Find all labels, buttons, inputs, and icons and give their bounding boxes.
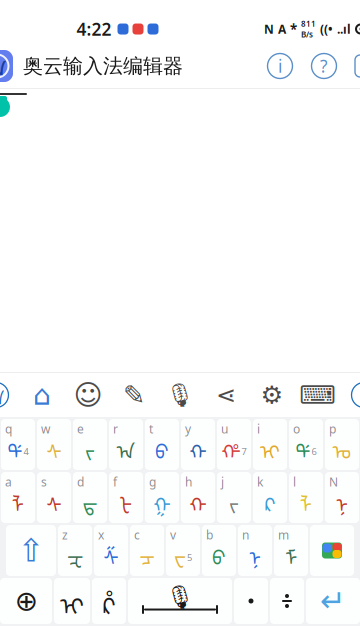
button[interactable]: p: [325, 419, 359, 470]
button[interactable]: q: [1, 419, 35, 470]
button[interactable]: e: [73, 419, 107, 470]
staticText: ᡩ: [295, 430, 310, 464]
staticText: 7: [241, 445, 246, 458]
staticText: o: [293, 421, 300, 437]
button[interactable]: f: [109, 472, 143, 523]
staticText: A: [278, 21, 286, 37]
button[interactable]: Information: [261, 47, 299, 85]
button[interactable]: Symbols: [270, 578, 304, 624]
staticText: r: [113, 421, 118, 437]
staticText: ᠬ: [189, 430, 206, 464]
button[interactable]: Emoji: [69, 375, 107, 415]
button[interactable]: Space: [128, 578, 232, 624]
staticText: *: [290, 20, 297, 38]
button[interactable]: t: [145, 419, 179, 470]
staticText: d: [77, 474, 84, 490]
staticText: l: [293, 474, 296, 490]
staticText: q: [5, 421, 12, 437]
staticText: 811 B/s: [301, 18, 316, 40]
button[interactable]: Mongolian letter: [92, 578, 126, 624]
staticText: ᠵ: [85, 430, 95, 464]
staticText: ⋖: [216, 381, 236, 409]
staticText: y: [185, 421, 191, 437]
staticText: s: [41, 474, 47, 490]
button[interactable]: d: [73, 472, 107, 523]
button[interactable]: g: [145, 472, 179, 523]
staticText: ⇧: [17, 532, 44, 569]
staticText: ⚙: [260, 381, 283, 409]
button[interactable]: s: [37, 472, 71, 523]
button[interactable]: Voice input: [161, 375, 199, 415]
staticText: ((•: [320, 21, 333, 37]
button[interactable]: Input method: [310, 525, 354, 576]
staticText: ᠯ: [300, 483, 312, 517]
button[interactable]: m: [274, 525, 308, 576]
staticText: ᠵ: [229, 483, 239, 517]
button[interactable]: j: [217, 472, 251, 523]
staticText: ᠢ: [60, 580, 84, 621]
button[interactable]: Settings: [253, 375, 291, 415]
button[interactable]: h: [181, 472, 215, 523]
staticText: ᠯ: [12, 483, 24, 517]
staticText: ᠪ: [212, 536, 226, 570]
button[interactable]: z: [58, 525, 92, 576]
button[interactable]: o: [289, 419, 323, 470]
staticText: ᠨ: [336, 483, 348, 517]
staticText: 🎙: [165, 584, 194, 610]
staticText: z: [62, 527, 68, 543]
staticText: ᠨ: [249, 536, 261, 570]
button[interactable]: v: [166, 525, 200, 576]
button[interactable]: Switch language: [0, 578, 52, 624]
staticText: m: [278, 527, 289, 543]
button[interactable]: y: [181, 419, 215, 470]
staticText: ↵: [320, 584, 346, 618]
button[interactable]: Hide keyboard: [345, 375, 360, 415]
staticText: ᠤ: [332, 430, 351, 464]
button[interactable]: Return: [306, 578, 360, 624]
staticText: ?: [320, 54, 328, 77]
staticText: ᡩ: [7, 430, 22, 464]
button[interactable]: x: [94, 525, 128, 576]
button[interactable]: u: [217, 419, 251, 470]
staticText: f: [113, 474, 117, 490]
staticText: v: [170, 527, 176, 543]
button[interactable]: Help: [305, 47, 343, 85]
button[interactable]: Mongolian letter: [54, 578, 90, 624]
staticText: g: [149, 474, 156, 490]
staticText: i: [257, 421, 260, 437]
staticText: 4:22: [76, 17, 111, 40]
staticText: ᡭ: [102, 580, 115, 621]
button[interactable]: Mongolian input: [0, 375, 15, 415]
staticText: 🎙: [165, 382, 194, 408]
button[interactable]: Period: [234, 578, 268, 624]
staticText: ⌂: [33, 379, 51, 411]
button[interactable]: Share: [207, 375, 245, 415]
staticText: ᠢ: [260, 430, 280, 464]
button[interactable]: Shift: [6, 525, 56, 576]
staticText: ᠭ: [153, 483, 170, 517]
staticText: ⌄: [355, 384, 360, 406]
staticText: ᠠ: [0, 380, 4, 410]
staticText: ᠳ: [82, 483, 97, 517]
staticText: ᠰ: [46, 430, 61, 464]
button[interactable]: k: [253, 472, 287, 523]
button[interactable]: Home: [23, 375, 61, 415]
button[interactable]: w: [37, 419, 71, 470]
staticText: ᠱ: [103, 536, 118, 570]
staticText: n: [242, 527, 249, 543]
button[interactable]: Keyboard layout: [299, 375, 337, 415]
staticText: h: [185, 474, 192, 490]
staticText: ⌨: [299, 381, 336, 409]
button[interactable]: Share: [347, 47, 360, 85]
button[interactable]: c: [130, 525, 164, 576]
button[interactable]: r: [109, 419, 143, 470]
button[interactable]: Handwriting: [115, 375, 153, 415]
button[interactable]: N: [325, 472, 359, 523]
button[interactable]: n: [238, 525, 272, 576]
button[interactable]: a: [1, 472, 35, 523]
button[interactable]: b: [202, 525, 236, 576]
button[interactable]: l: [289, 472, 323, 523]
staticText: ᠺ: [264, 483, 275, 517]
button[interactable]: i: [253, 419, 287, 470]
staticText: N: [329, 474, 338, 490]
